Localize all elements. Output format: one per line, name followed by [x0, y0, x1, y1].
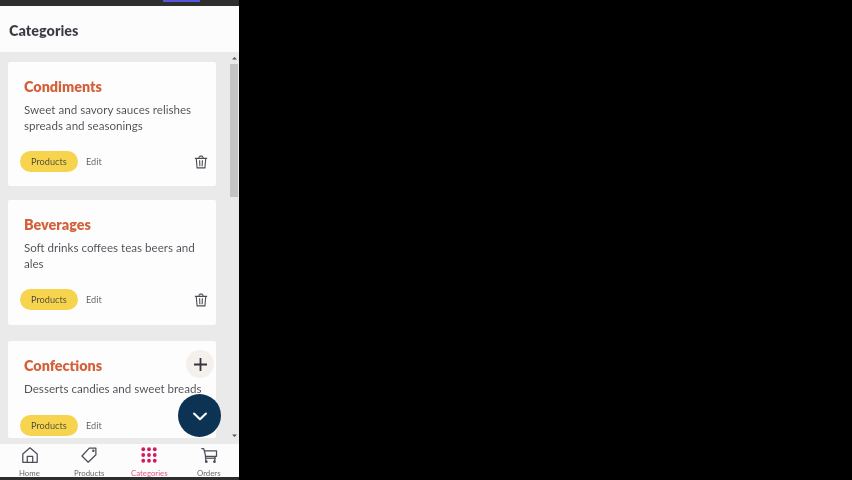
button[interactable]: Home — [0, 444, 59, 477]
button[interactable]: Delete — [190, 151, 211, 172]
staticText: Products — [31, 156, 67, 167]
staticText: Categories — [9, 22, 79, 39]
button[interactable]: Products — [20, 151, 78, 172]
staticText: Edit — [86, 156, 102, 167]
staticText: Soft drinks coffees teas beers and ales — [24, 241, 206, 271]
button[interactable]: Categories — [119, 444, 179, 477]
button[interactable]: Scroll down — [178, 394, 221, 437]
button[interactable]: Add category — [186, 350, 214, 378]
button[interactable]: Products — [59, 444, 119, 477]
staticText: Edit — [86, 420, 102, 431]
staticText: Home — [19, 468, 40, 477]
staticText: Condiments — [24, 78, 102, 95]
staticText: Beverages — [24, 216, 91, 233]
staticText: Categories — [131, 468, 168, 477]
staticText: Products — [74, 468, 105, 477]
staticText: Desserts candies and sweet breads — [24, 382, 206, 396]
staticText: Products — [31, 420, 67, 431]
button[interactable]: Products — [20, 289, 78, 310]
button[interactable]: Edit — [82, 415, 106, 436]
button[interactable]: Delete — [190, 289, 211, 310]
button[interactable]: Confections — [8, 341, 216, 438]
button[interactable]: Delete — [190, 415, 211, 436]
staticText: Sweet and savory sauces relishes spreads… — [24, 103, 206, 133]
button[interactable]: Orders — [179, 444, 239, 477]
staticText: Edit — [86, 294, 102, 305]
button[interactable]: Edit — [82, 151, 106, 172]
button[interactable]: Products — [20, 415, 78, 436]
staticText: Confections — [24, 357, 103, 374]
staticText: Orders — [197, 468, 221, 477]
button[interactable]: Condiments — [8, 62, 216, 186]
staticText: Products — [31, 294, 67, 305]
button[interactable]: Edit — [82, 289, 106, 310]
button[interactable]: Beverages — [8, 200, 216, 325]
